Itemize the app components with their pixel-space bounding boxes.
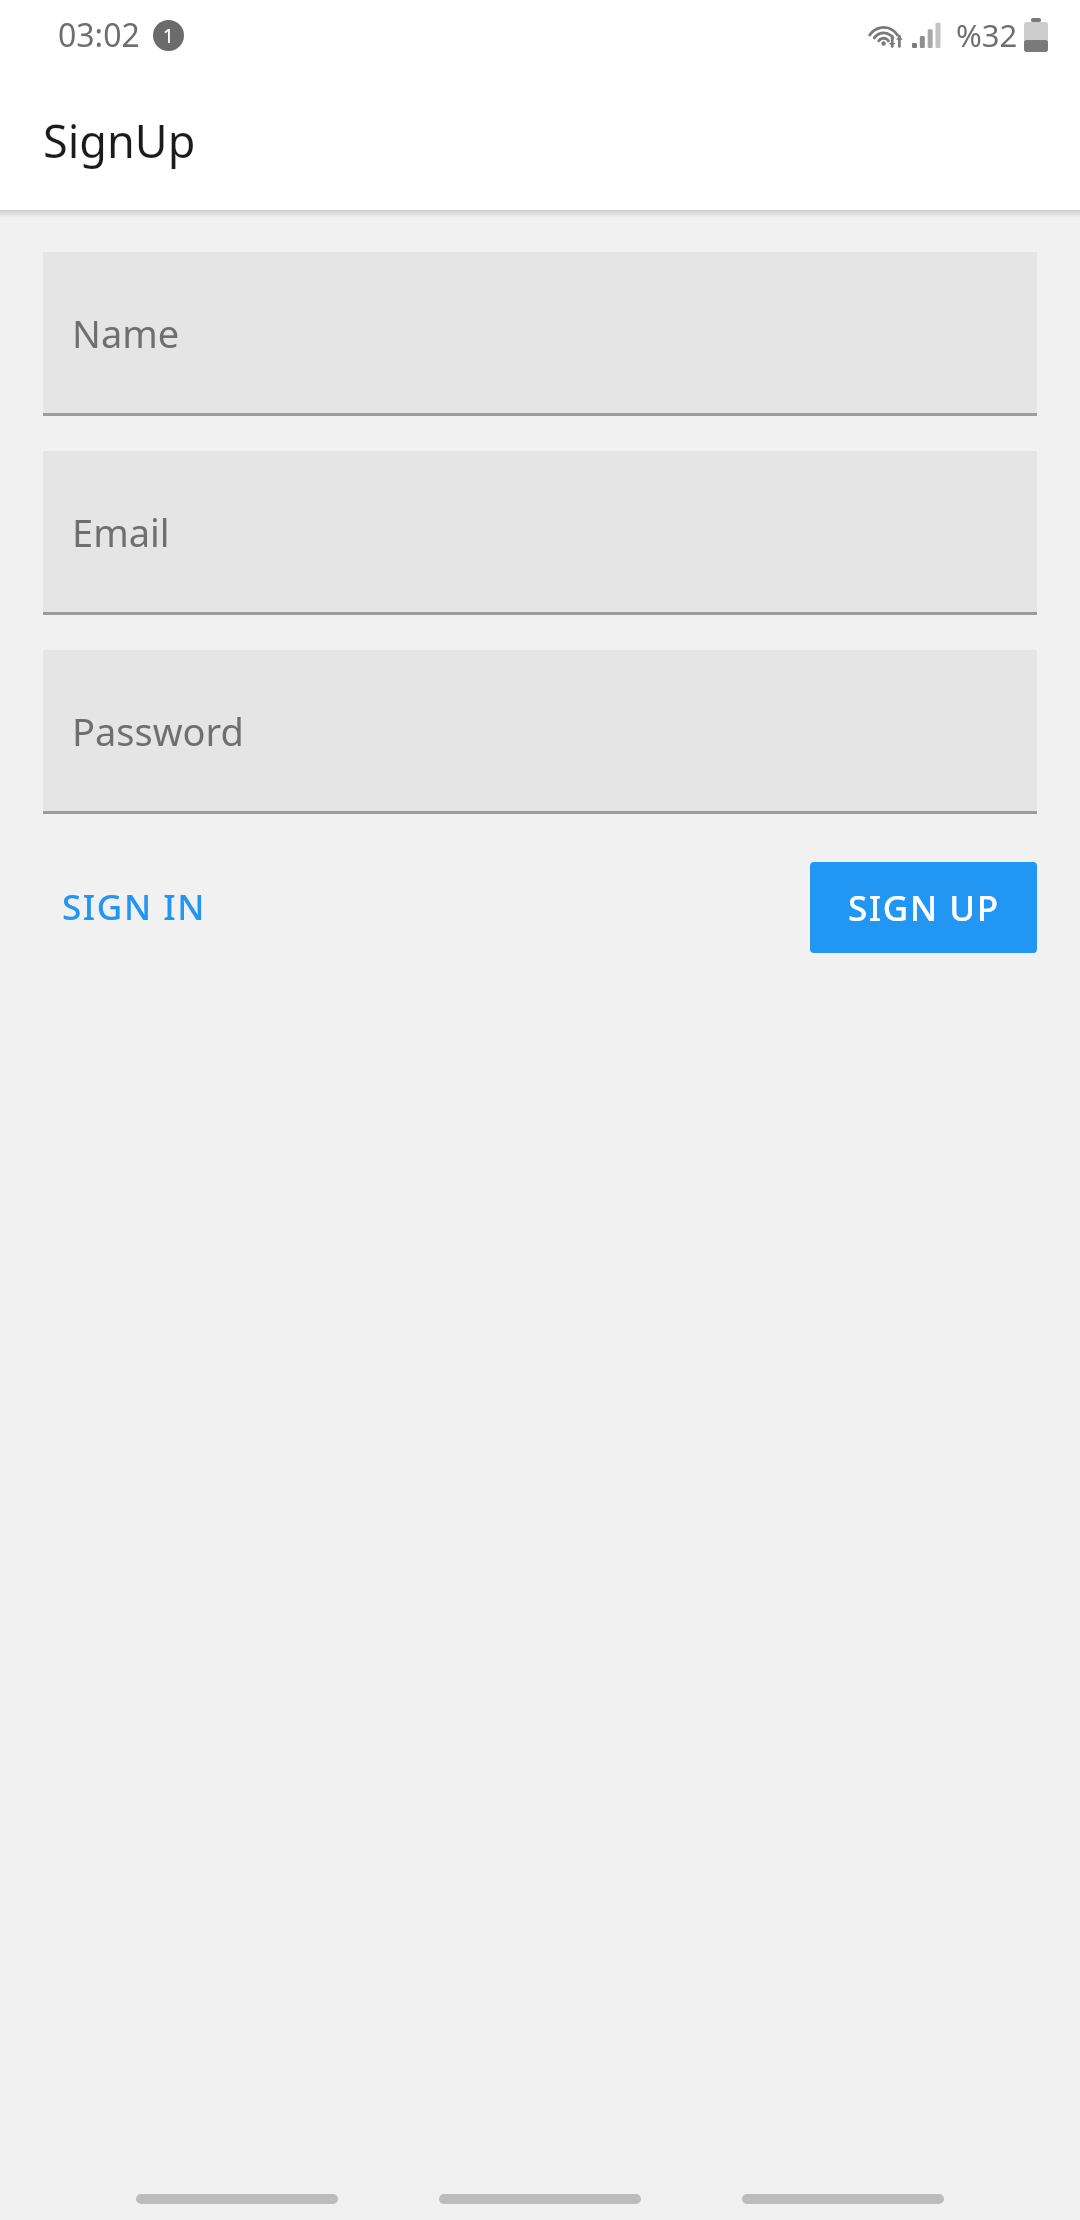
staticText: 03:02 — [58, 13, 140, 57]
button[interactable]: Password — [43, 650, 1037, 814]
staticText: Email — [72, 506, 170, 558]
staticText: SignUp — [43, 110, 196, 171]
button[interactable]: Name — [43, 252, 1037, 416]
staticText: %32 — [956, 14, 1018, 56]
other: Home — [439, 2194, 641, 2204]
button[interactable]: Email — [43, 451, 1037, 615]
staticText: Password — [72, 705, 244, 757]
other: Back — [136, 2194, 338, 2204]
staticText: 1 — [163, 23, 174, 49]
staticText: Name — [72, 307, 180, 359]
other: Recents — [742, 2194, 944, 2204]
staticText: SIGN UP — [848, 884, 1000, 932]
button[interactable]: SIGN UP — [810, 862, 1037, 953]
staticText: SIGN IN — [62, 883, 207, 931]
button[interactable]: SIGN IN — [43, 861, 226, 953]
